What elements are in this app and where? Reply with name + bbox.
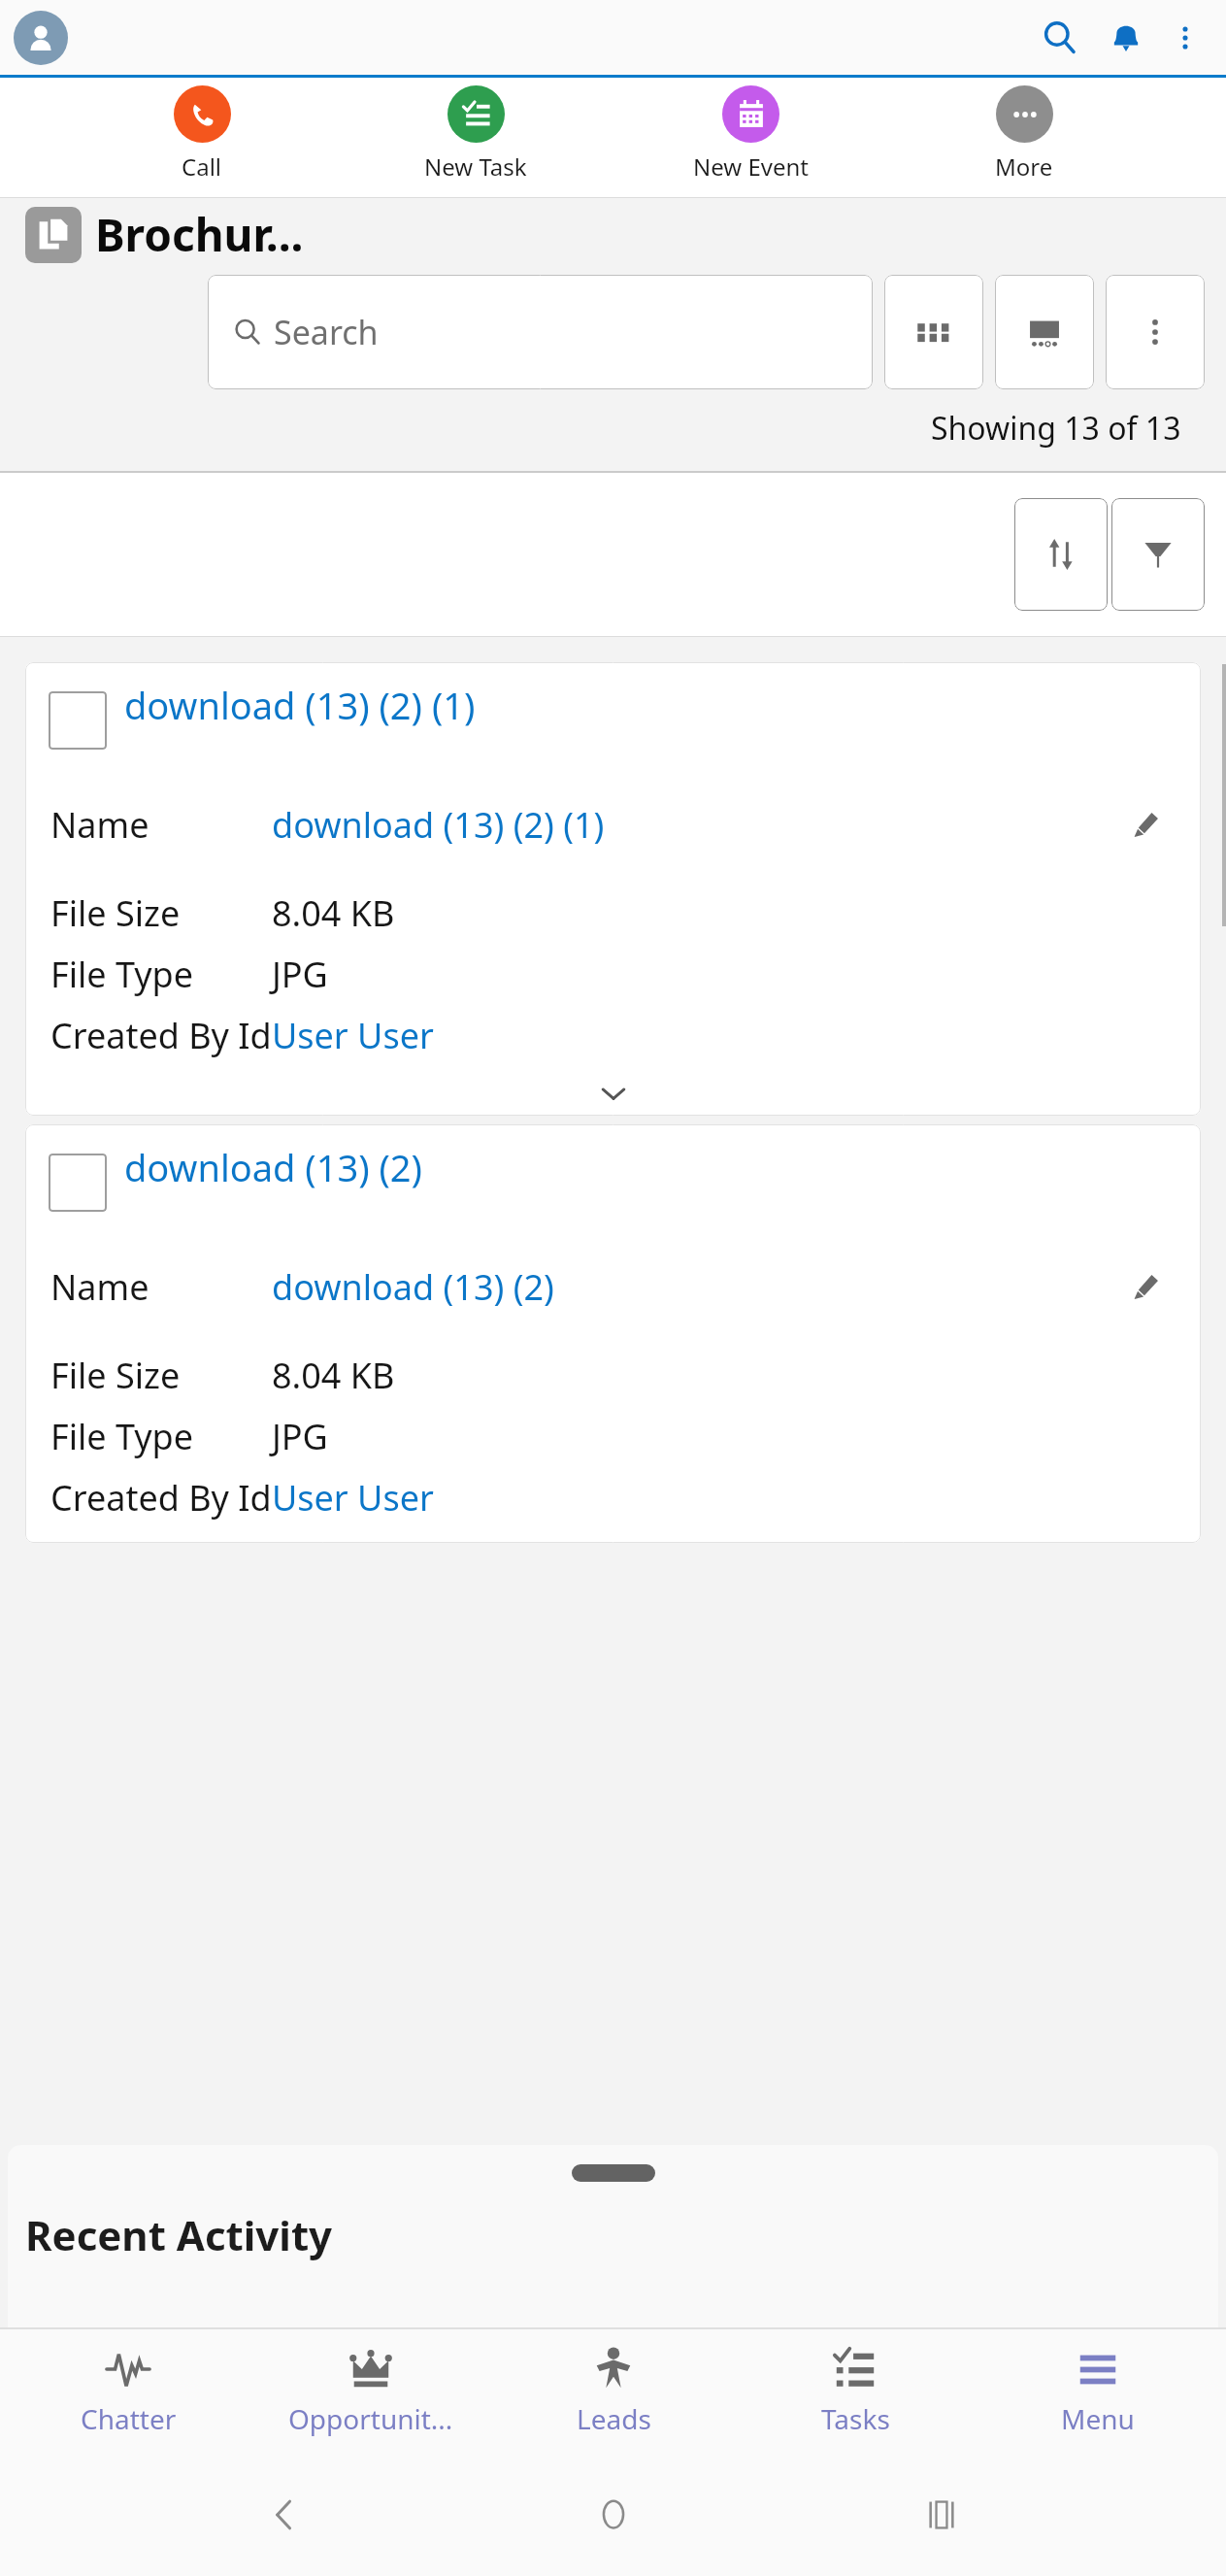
- button[interactable]: Notifications: [1096, 8, 1156, 68]
- staticText: Menu: [1061, 2400, 1135, 2437]
- button[interactable]: New Task: [403, 85, 548, 183]
- button[interactable]: Back: [241, 2471, 328, 2559]
- staticText: 8.04 KB: [272, 1352, 395, 1399]
- staticText: File Size: [50, 1352, 272, 1399]
- button[interactable]: Drag handle: [572, 2164, 655, 2182]
- staticText: File Type: [50, 951, 272, 998]
- staticText: Name: [50, 801, 272, 849]
- button[interactable]: Select download (13) (2) (1): [25, 662, 1201, 1116]
- staticText: Opportunit...: [288, 2400, 453, 2437]
- staticText: Tasks: [821, 2400, 890, 2437]
- button[interactable]: More: [951, 85, 1097, 183]
- staticText: New Task: [424, 151, 527, 183]
- staticText: File Type: [50, 1413, 272, 1460]
- button[interactable]: More options: [1158, 11, 1212, 65]
- button[interactable]: Call: [129, 85, 275, 183]
- button[interactable]: Home: [570, 2471, 657, 2559]
- button[interactable]: Chatter: [14, 2329, 243, 2454]
- staticText: New Event: [693, 151, 809, 183]
- button[interactable]: List options: [1106, 275, 1205, 389]
- button[interactable]: Expand: [25, 1071, 1201, 1116]
- staticText: Created By Id: [50, 1474, 272, 1522]
- staticText: Call: [182, 151, 222, 183]
- button[interactable]: Select download (13) (2): [49, 1154, 107, 1212]
- button[interactable]: New Event: [678, 85, 823, 183]
- button[interactable]: Recent apps: [898, 2471, 985, 2559]
- staticText: Brochur...: [95, 204, 304, 265]
- button[interactable]: Leads: [499, 2329, 728, 2454]
- button[interactable]: Card view: [995, 275, 1094, 389]
- staticText: User User: [272, 1474, 434, 1522]
- staticText: download (13) (2): [124, 1142, 423, 1192]
- button[interactable]: Tasks: [741, 2329, 970, 2454]
- button[interactable]: Search: [208, 275, 873, 389]
- button[interactable]: Grid view: [884, 275, 983, 389]
- button[interactable]: Search: [1030, 8, 1090, 68]
- staticText: download (13) (2): [272, 1263, 1113, 1311]
- staticText: 8.04 KB: [272, 889, 395, 937]
- button[interactable]: Menu: [983, 2329, 1212, 2454]
- staticText: User User: [272, 1012, 434, 1059]
- staticText: Leads: [577, 2400, 651, 2437]
- button[interactable]: Filter: [1111, 498, 1205, 611]
- staticText: Created By Id: [50, 1012, 272, 1059]
- staticText: JPG: [272, 951, 328, 998]
- staticText: Name: [50, 1263, 272, 1311]
- button[interactable]: Edit Name: [1113, 1255, 1177, 1319]
- button[interactable]: Edit Name: [1113, 792, 1177, 856]
- staticText: download (13) (2) (1): [272, 801, 1113, 849]
- button[interactable]: Opportunit...: [256, 2329, 485, 2454]
- staticText: Chatter: [81, 2400, 177, 2437]
- button[interactable]: Select download (13) (2): [25, 1124, 1201, 1543]
- button[interactable]: Profile: [14, 11, 68, 65]
- staticText: More: [995, 151, 1053, 183]
- button[interactable]: Sort: [1014, 498, 1108, 611]
- staticText: download (13) (2) (1): [124, 680, 476, 730]
- staticText: Search: [274, 310, 379, 354]
- staticText: File Size: [50, 889, 272, 937]
- staticText: Showing 13 of 13: [931, 407, 1181, 450]
- staticText: JPG: [272, 1413, 328, 1460]
- button[interactable]: Select download (13) (2) (1): [49, 691, 107, 750]
- staticText: Recent Activity: [25, 2207, 333, 2262]
